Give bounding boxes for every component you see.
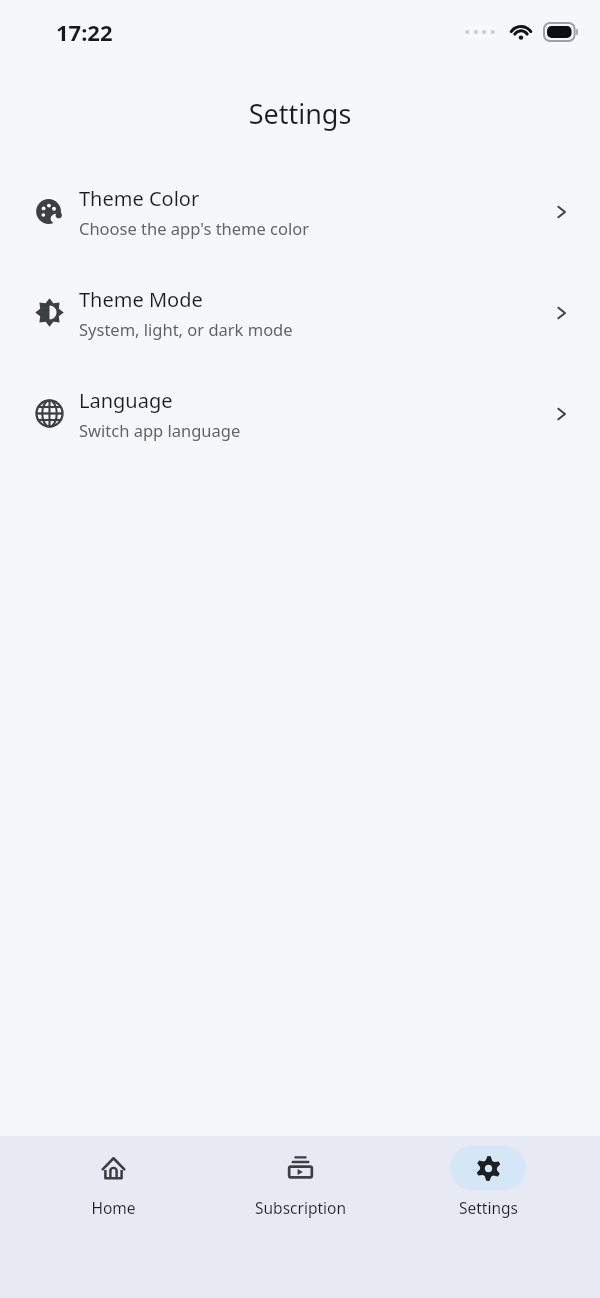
staticText: Theme Color (79, 185, 200, 212)
staticText: Switch app language (79, 419, 241, 441)
staticText: Settings (0, 95, 600, 132)
button[interactable]: Theme Mode (0, 262, 600, 363)
staticText: Settings (459, 1197, 518, 1218)
staticText: Language (79, 387, 173, 414)
other: Home (100, 1155, 127, 1182)
button[interactable]: Theme Color (0, 161, 600, 262)
staticText: Theme Mode (79, 286, 203, 313)
staticText: 17:22 (56, 17, 113, 47)
staticText: Choose the app's theme color (79, 217, 310, 239)
other: Subscription (287, 1155, 314, 1182)
button[interactable]: Settings (413, 1146, 563, 1218)
staticText: System, light, or dark mode (79, 318, 293, 340)
other: Settings (475, 1155, 502, 1182)
button[interactable]: Home (38, 1146, 188, 1218)
staticText: Subscription (255, 1197, 346, 1218)
button[interactable]: Subscription (225, 1146, 375, 1218)
staticText: Home (91, 1197, 136, 1218)
button[interactable]: Language (0, 363, 600, 464)
